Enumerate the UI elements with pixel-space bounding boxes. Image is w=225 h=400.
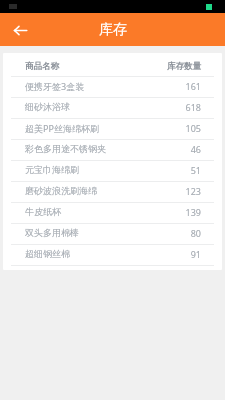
button[interactable]: 彩色多用途不锈钢夹 — [3, 140, 222, 160]
staticText: 便携牙签3盒装 — [25, 80, 85, 92]
button[interactable]: 超美PP丝海绵杯刷 — [3, 119, 222, 139]
staticText: 161 — [185, 80, 201, 92]
staticText: 磨砂波浪洗刷海绵 — [25, 185, 97, 196]
button[interactable]: 双头多用棉棒 — [3, 224, 222, 244]
staticText: 商品名称 — [25, 61, 59, 72]
button[interactable]: 细砂沐浴球 — [3, 98, 222, 118]
staticText: 超美PP丝海绵杯刷 — [25, 122, 99, 134]
staticText: 46 — [190, 143, 201, 155]
staticText: 618 — [185, 101, 201, 113]
staticText: 80 — [190, 227, 201, 239]
staticText: 51 — [190, 164, 201, 176]
button[interactable]: Back — [7, 17, 33, 43]
staticText: 彩色多用途不锈钢夹 — [25, 143, 106, 154]
staticText: 139 — [185, 206, 201, 218]
button[interactable]: 便携牙签3盒装 — [3, 77, 222, 97]
staticText: 超细钢丝棉 — [25, 248, 70, 259]
staticText: 库存数量 — [167, 61, 201, 72]
button[interactable]: 牛皮纸杯 — [3, 203, 222, 223]
staticText: 105 — [185, 122, 201, 134]
button[interactable]: 元宝巾海绵刷 — [3, 161, 222, 181]
button[interactable]: 超细钢丝棉 — [3, 245, 222, 265]
staticText: 123 — [185, 185, 201, 197]
staticText: 牛皮纸杯 — [25, 206, 61, 217]
staticText: 库存 — [99, 21, 127, 39]
staticText: 91 — [190, 248, 201, 260]
button[interactable]: 磨砂波浪洗刷海绵 — [3, 182, 222, 202]
staticText: 元宝巾海绵刷 — [25, 164, 79, 175]
staticText: 双头多用棉棒 — [25, 227, 79, 238]
staticText: 细砂沐浴球 — [25, 101, 70, 112]
